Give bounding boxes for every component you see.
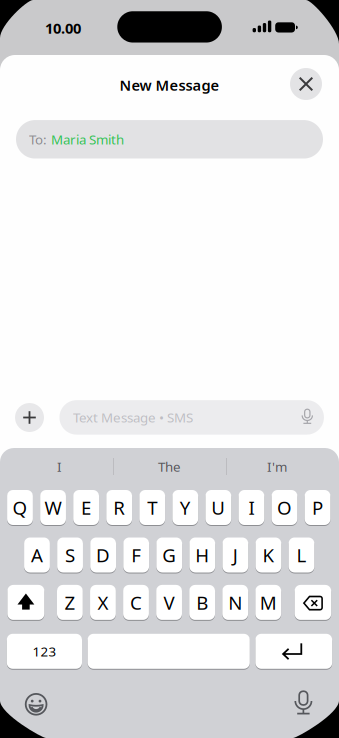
button[interactable]: P — [305, 489, 330, 526]
staticText: N — [228, 590, 242, 615]
staticText: New Message — [119, 75, 219, 95]
button[interactable]: Space — [88, 633, 250, 670]
button[interactable]: U — [205, 489, 231, 526]
button[interactable]: X — [90, 584, 116, 621]
button[interactable]: I — [238, 489, 264, 526]
button[interactable]: R — [106, 489, 132, 526]
button[interactable]: Emoji — [23, 691, 49, 717]
button[interactable]: Add attachment — [15, 403, 44, 432]
staticText: I — [248, 495, 254, 520]
button[interactable]: The — [116, 452, 222, 480]
button[interactable]: V — [156, 584, 182, 621]
staticText: F — [131, 543, 141, 567]
staticText: The — [158, 458, 181, 475]
staticText: P — [312, 495, 323, 520]
staticText: I — [57, 458, 62, 475]
button[interactable]: N — [222, 584, 248, 621]
button[interactable]: D — [90, 536, 116, 573]
staticText: D — [96, 543, 110, 567]
button[interactable]: J — [222, 536, 248, 573]
button[interactable]: Close — [290, 68, 322, 100]
button[interactable]: Return — [255, 633, 332, 670]
staticText: C — [130, 590, 142, 615]
button[interactable]: G — [156, 536, 182, 573]
button[interactable]: To: — [16, 120, 323, 159]
button[interactable]: Q — [7, 489, 33, 526]
staticText: J — [233, 543, 238, 567]
button[interactable]: M — [255, 584, 281, 621]
staticText: M — [260, 590, 277, 615]
button[interactable]: Delete — [295, 584, 331, 621]
button[interactable]: F — [123, 536, 149, 573]
button[interactable]: E — [73, 489, 99, 526]
button[interactable]: Shift — [7, 584, 44, 621]
staticText: O — [277, 495, 292, 520]
staticText: Y — [180, 495, 191, 520]
button[interactable]: W — [40, 489, 66, 526]
button[interactable]: Y — [172, 489, 198, 526]
staticText: B — [196, 590, 208, 615]
button[interactable]: A — [24, 536, 50, 573]
button[interactable]: I — [6, 452, 112, 480]
button[interactable]: I'm — [224, 452, 330, 480]
staticText: V — [164, 590, 175, 615]
staticText: Text Message • SMS — [73, 408, 193, 426]
button[interactable]: T — [139, 489, 165, 526]
staticText: K — [262, 543, 274, 567]
button[interactable]: B — [189, 584, 215, 621]
button[interactable]: Dictation — [290, 690, 316, 716]
button[interactable]: Numbers — [7, 633, 82, 670]
staticText: L — [296, 543, 306, 567]
staticText: Maria Smith — [51, 130, 124, 148]
button[interactable]: Dictate — [296, 405, 318, 427]
staticText: S — [65, 543, 75, 567]
staticText: 10.00 — [45, 18, 81, 38]
staticText: U — [211, 495, 225, 520]
staticText: Z — [64, 590, 75, 615]
staticText: I'm — [267, 458, 287, 475]
button[interactable]: K — [255, 536, 281, 573]
button[interactable]: S — [57, 536, 83, 573]
button[interactable]: O — [272, 489, 297, 526]
staticText: R — [113, 495, 125, 520]
staticText: H — [195, 543, 209, 567]
staticText: 123 — [32, 642, 56, 660]
staticText: G — [162, 543, 176, 567]
button[interactable]: H — [189, 536, 215, 573]
staticText: A — [31, 543, 43, 567]
staticText: E — [81, 495, 91, 520]
button[interactable]: Text Message • SMS — [59, 400, 324, 435]
staticText: T — [147, 495, 157, 520]
button[interactable]: Z — [57, 584, 83, 621]
staticText: W — [45, 495, 62, 520]
staticText: X — [97, 590, 108, 615]
button[interactable]: C — [123, 584, 149, 621]
button[interactable]: L — [289, 536, 314, 573]
staticText: Q — [12, 495, 27, 520]
staticText: To: — [29, 130, 47, 148]
